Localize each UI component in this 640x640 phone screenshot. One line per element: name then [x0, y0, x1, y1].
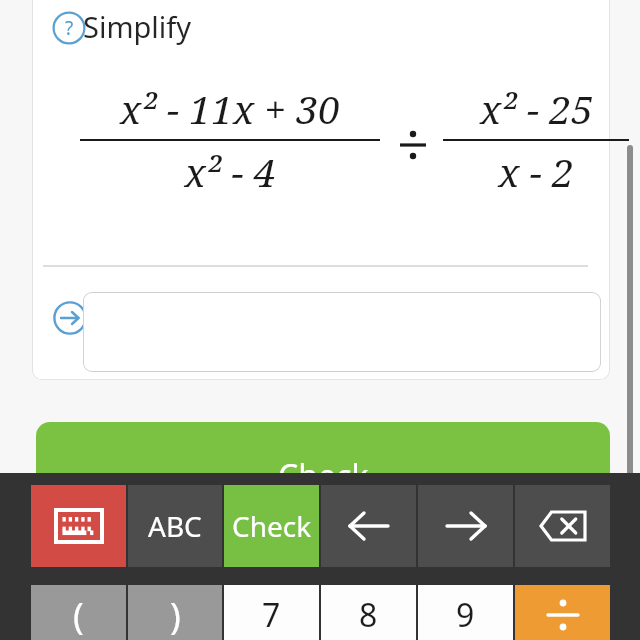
button[interactable]: Help — [52, 8, 195, 47]
other: Help — [52, 11, 86, 45]
staticText: ) — [170, 591, 181, 640]
button[interactable]: 8 — [321, 585, 416, 640]
staticText: ? — [65, 15, 74, 41]
button[interactable]: Move left — [321, 485, 416, 567]
staticText: Check — [278, 454, 369, 498]
button[interactable]: ) — [128, 585, 222, 640]
button[interactable]: Move right — [418, 485, 513, 567]
staticText: x − 2 — [498, 145, 574, 198]
staticText: Check — [232, 507, 312, 545]
button[interactable]: Backspace — [515, 485, 610, 567]
button[interactable]: ( — [31, 585, 126, 640]
staticText: ( — [73, 591, 84, 640]
staticText: 8 — [359, 593, 378, 637]
button[interactable]: 7 — [224, 585, 319, 640]
button: Hide keyboard — [0, 473, 640, 640]
button[interactable]: Hide keyboard — [31, 485, 126, 567]
button[interactable]: ABC — [128, 485, 222, 567]
button[interactable]: 9 — [418, 585, 513, 640]
staticText: Simplify — [83, 7, 192, 46]
button[interactable] — [83, 292, 601, 372]
staticText: 7 — [262, 593, 281, 637]
staticText: x² − 11x + 30 — [120, 82, 340, 135]
staticText: x² − 4 — [184, 145, 276, 198]
button[interactable]: Divide — [515, 585, 610, 640]
button[interactable]: Submit answer — [53, 301, 87, 335]
button[interactable]: Check — [224, 485, 319, 567]
button[interactable]: Check — [36, 422, 610, 512]
staticText: x² − 25 — [480, 82, 593, 135]
staticText: 9 — [456, 593, 475, 637]
staticText: ABC — [148, 507, 202, 545]
